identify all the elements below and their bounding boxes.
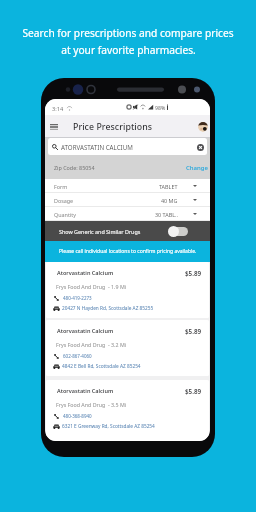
button[interactable]: Directions to 20427 N Hayden Rd, Scottsd… <box>53 305 154 311</box>
button[interactable]: Dosage <box>54 193 178 207</box>
staticText: 30 TABL.. <box>155 211 178 218</box>
staticText: $5.89 <box>185 387 202 396</box>
staticText: Search for prescriptions and compare pri… <box>22 26 234 40</box>
staticText: Please call individual locations to conf… <box>59 248 197 255</box>
button[interactable]: Directions to 4842 E Bell Rd, Scottsdale… <box>53 363 141 369</box>
staticText: $5.89 <box>185 269 202 278</box>
staticText: Price Prescriptions <box>73 121 153 133</box>
staticText: ATORVASTATIN CALCIUM <box>61 143 133 151</box>
button[interactable]: ATORVASTATIN CALCIUM <box>52 138 205 155</box>
staticText: Quantity <box>54 211 76 218</box>
staticText: Show Generic and Similar Drugs <box>59 228 141 235</box>
staticText: Frys Food And Drug - 3.5 Mi <box>56 401 127 408</box>
button[interactable]: Quantity <box>54 207 178 221</box>
staticText: 98% <box>155 104 166 111</box>
staticText: Form <box>54 183 68 190</box>
button[interactable]: Call 480-368-8940 <box>54 413 92 419</box>
staticText: 3:14 <box>52 105 64 113</box>
staticText: 6321 E Greenway Rd, Scottsdale AZ 85254 <box>62 423 155 429</box>
staticText: Dosage <box>54 197 74 204</box>
staticText: Change <box>186 164 208 172</box>
button[interactable]: Call 602-867-4060 <box>54 353 92 359</box>
button[interactable]: Change <box>185 161 209 175</box>
staticText: TABLET <box>159 183 178 190</box>
staticText: Frys Food And Drug - 1.9 Mi <box>56 283 127 290</box>
staticText: Atorvastatin Calcium <box>57 269 114 276</box>
button[interactable]: Account <box>198 122 208 132</box>
staticText: Atorvastatin Calcium <box>57 387 114 394</box>
staticText: 480-419-2273 <box>63 295 92 301</box>
staticText: Frys Food And Drug - 3.2 Mi <box>56 341 127 348</box>
button[interactable]: Call 480-419-2273 <box>54 295 92 301</box>
staticText: Atorvastatin Calcium <box>57 327 114 334</box>
button[interactable]: Atorvastatin Calcium <box>46 320 209 376</box>
button[interactable]: Atorvastatin Calcium <box>46 262 209 318</box>
staticText: Zip Code: 85054 <box>54 164 95 171</box>
staticText: 480-368-8940 <box>63 413 92 419</box>
staticText: 40 MG <box>161 197 178 204</box>
button[interactable]: Atorvastatin Calcium <box>46 380 209 441</box>
button[interactable]: Directions to 6321 E Greenway Rd, Scotts… <box>53 423 155 429</box>
staticText: 4842 E Bell Rd, Scottsdale AZ 85254 <box>62 363 141 369</box>
staticText: 20427 N Hayden Rd, Scottsdale AZ 85255 <box>62 305 154 311</box>
staticText: 602-867-4060 <box>63 353 92 359</box>
button[interactable]: Open navigation menu <box>46 119 61 135</box>
button[interactable]: Form <box>54 179 178 193</box>
staticText: $5.89 <box>185 327 202 336</box>
staticText: at your favorite pharmacies. <box>61 43 196 57</box>
button[interactable]: Clear search <box>195 142 205 152</box>
button[interactable]: Show Generic and Similar Drugs <box>59 221 188 241</box>
